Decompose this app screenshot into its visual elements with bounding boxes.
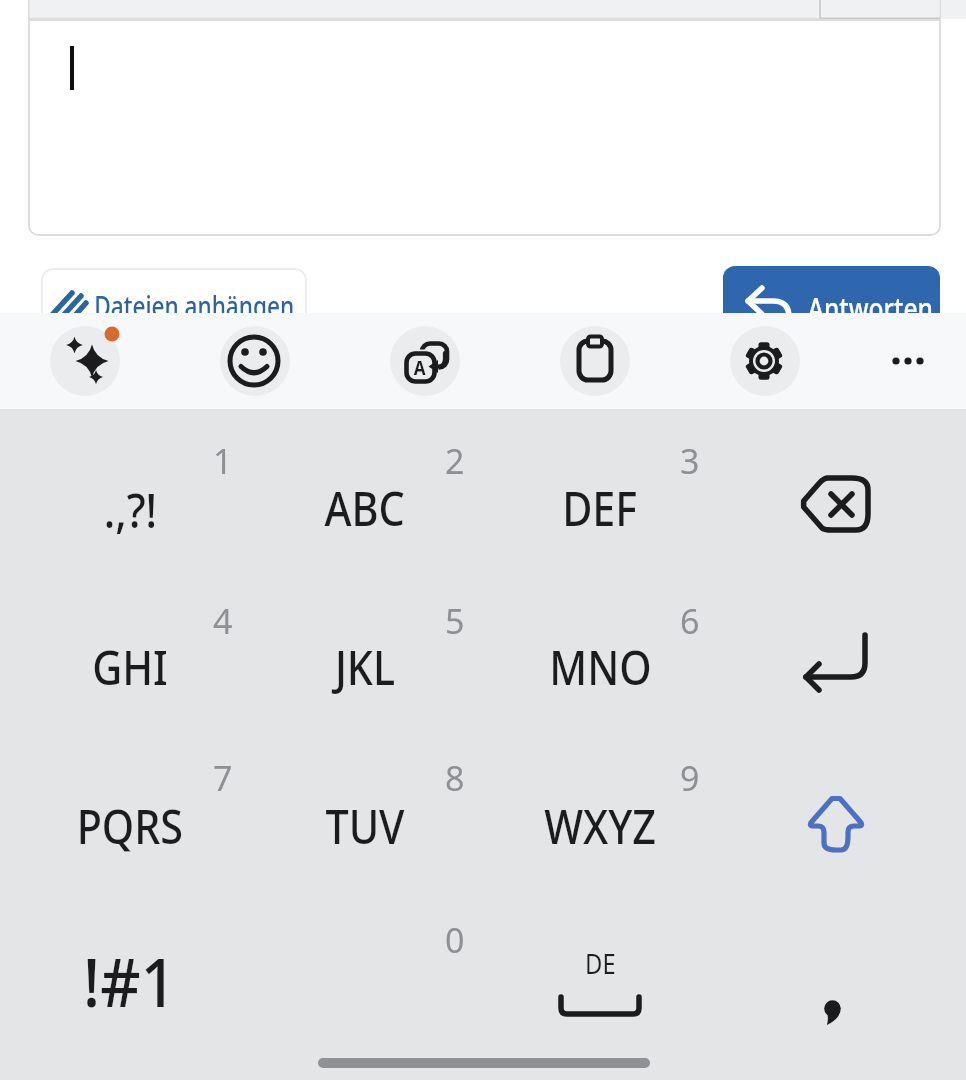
staticText: GHI [92, 634, 168, 699]
staticText: MNO [549, 634, 652, 699]
button[interactable] [255, 433, 475, 583]
button[interactable] [255, 751, 475, 901]
button[interactable] [725, 751, 945, 901]
button[interactable] [874, 326, 944, 396]
staticText: 2 [445, 438, 465, 484]
button[interactable] [255, 910, 475, 1060]
staticText: 9 [680, 755, 700, 801]
button[interactable] [490, 910, 710, 1060]
button[interactable] [490, 433, 710, 583]
button[interactable] [255, 592, 475, 742]
staticText: A [414, 355, 426, 381]
button[interactable] [20, 751, 240, 901]
staticText: 3 [680, 438, 700, 484]
button[interactable] [50, 326, 120, 396]
staticText: 6 [680, 598, 700, 644]
staticText: !#1 [83, 934, 177, 1027]
button[interactable] [20, 592, 240, 742]
staticText: 1 [213, 438, 233, 484]
staticText: ABC [325, 475, 405, 540]
button[interactable] [490, 592, 710, 742]
button[interactable] [20, 910, 240, 1060]
staticText: DEF [562, 475, 638, 540]
button[interactable] [41, 268, 307, 338]
staticText: 7 [213, 755, 233, 801]
staticText: .,?! [104, 477, 157, 542]
staticText: 4 [213, 598, 233, 644]
staticText: JKL [335, 634, 395, 699]
staticText: 8 [445, 755, 465, 801]
button[interactable] [20, 433, 240, 583]
button[interactable] [490, 751, 710, 901]
button[interactable] [560, 326, 630, 396]
button[interactable] [723, 266, 940, 344]
staticText: DE [585, 945, 616, 982]
staticText: WXYZ [544, 793, 657, 858]
button[interactable] [390, 326, 460, 396]
staticText: TUV [325, 793, 404, 858]
button[interactable] [730, 326, 800, 396]
staticText: 0 [445, 917, 465, 963]
button[interactable] [28, 19, 941, 236]
button[interactable] [725, 592, 945, 742]
staticText: 5 [445, 598, 465, 644]
button[interactable] [725, 910, 945, 1060]
staticText: PQRS [77, 793, 183, 858]
button[interactable] [725, 433, 945, 583]
staticText: Antworten [808, 288, 933, 329]
button[interactable] [220, 326, 290, 396]
staticText: Dateien anhängen [94, 286, 295, 325]
